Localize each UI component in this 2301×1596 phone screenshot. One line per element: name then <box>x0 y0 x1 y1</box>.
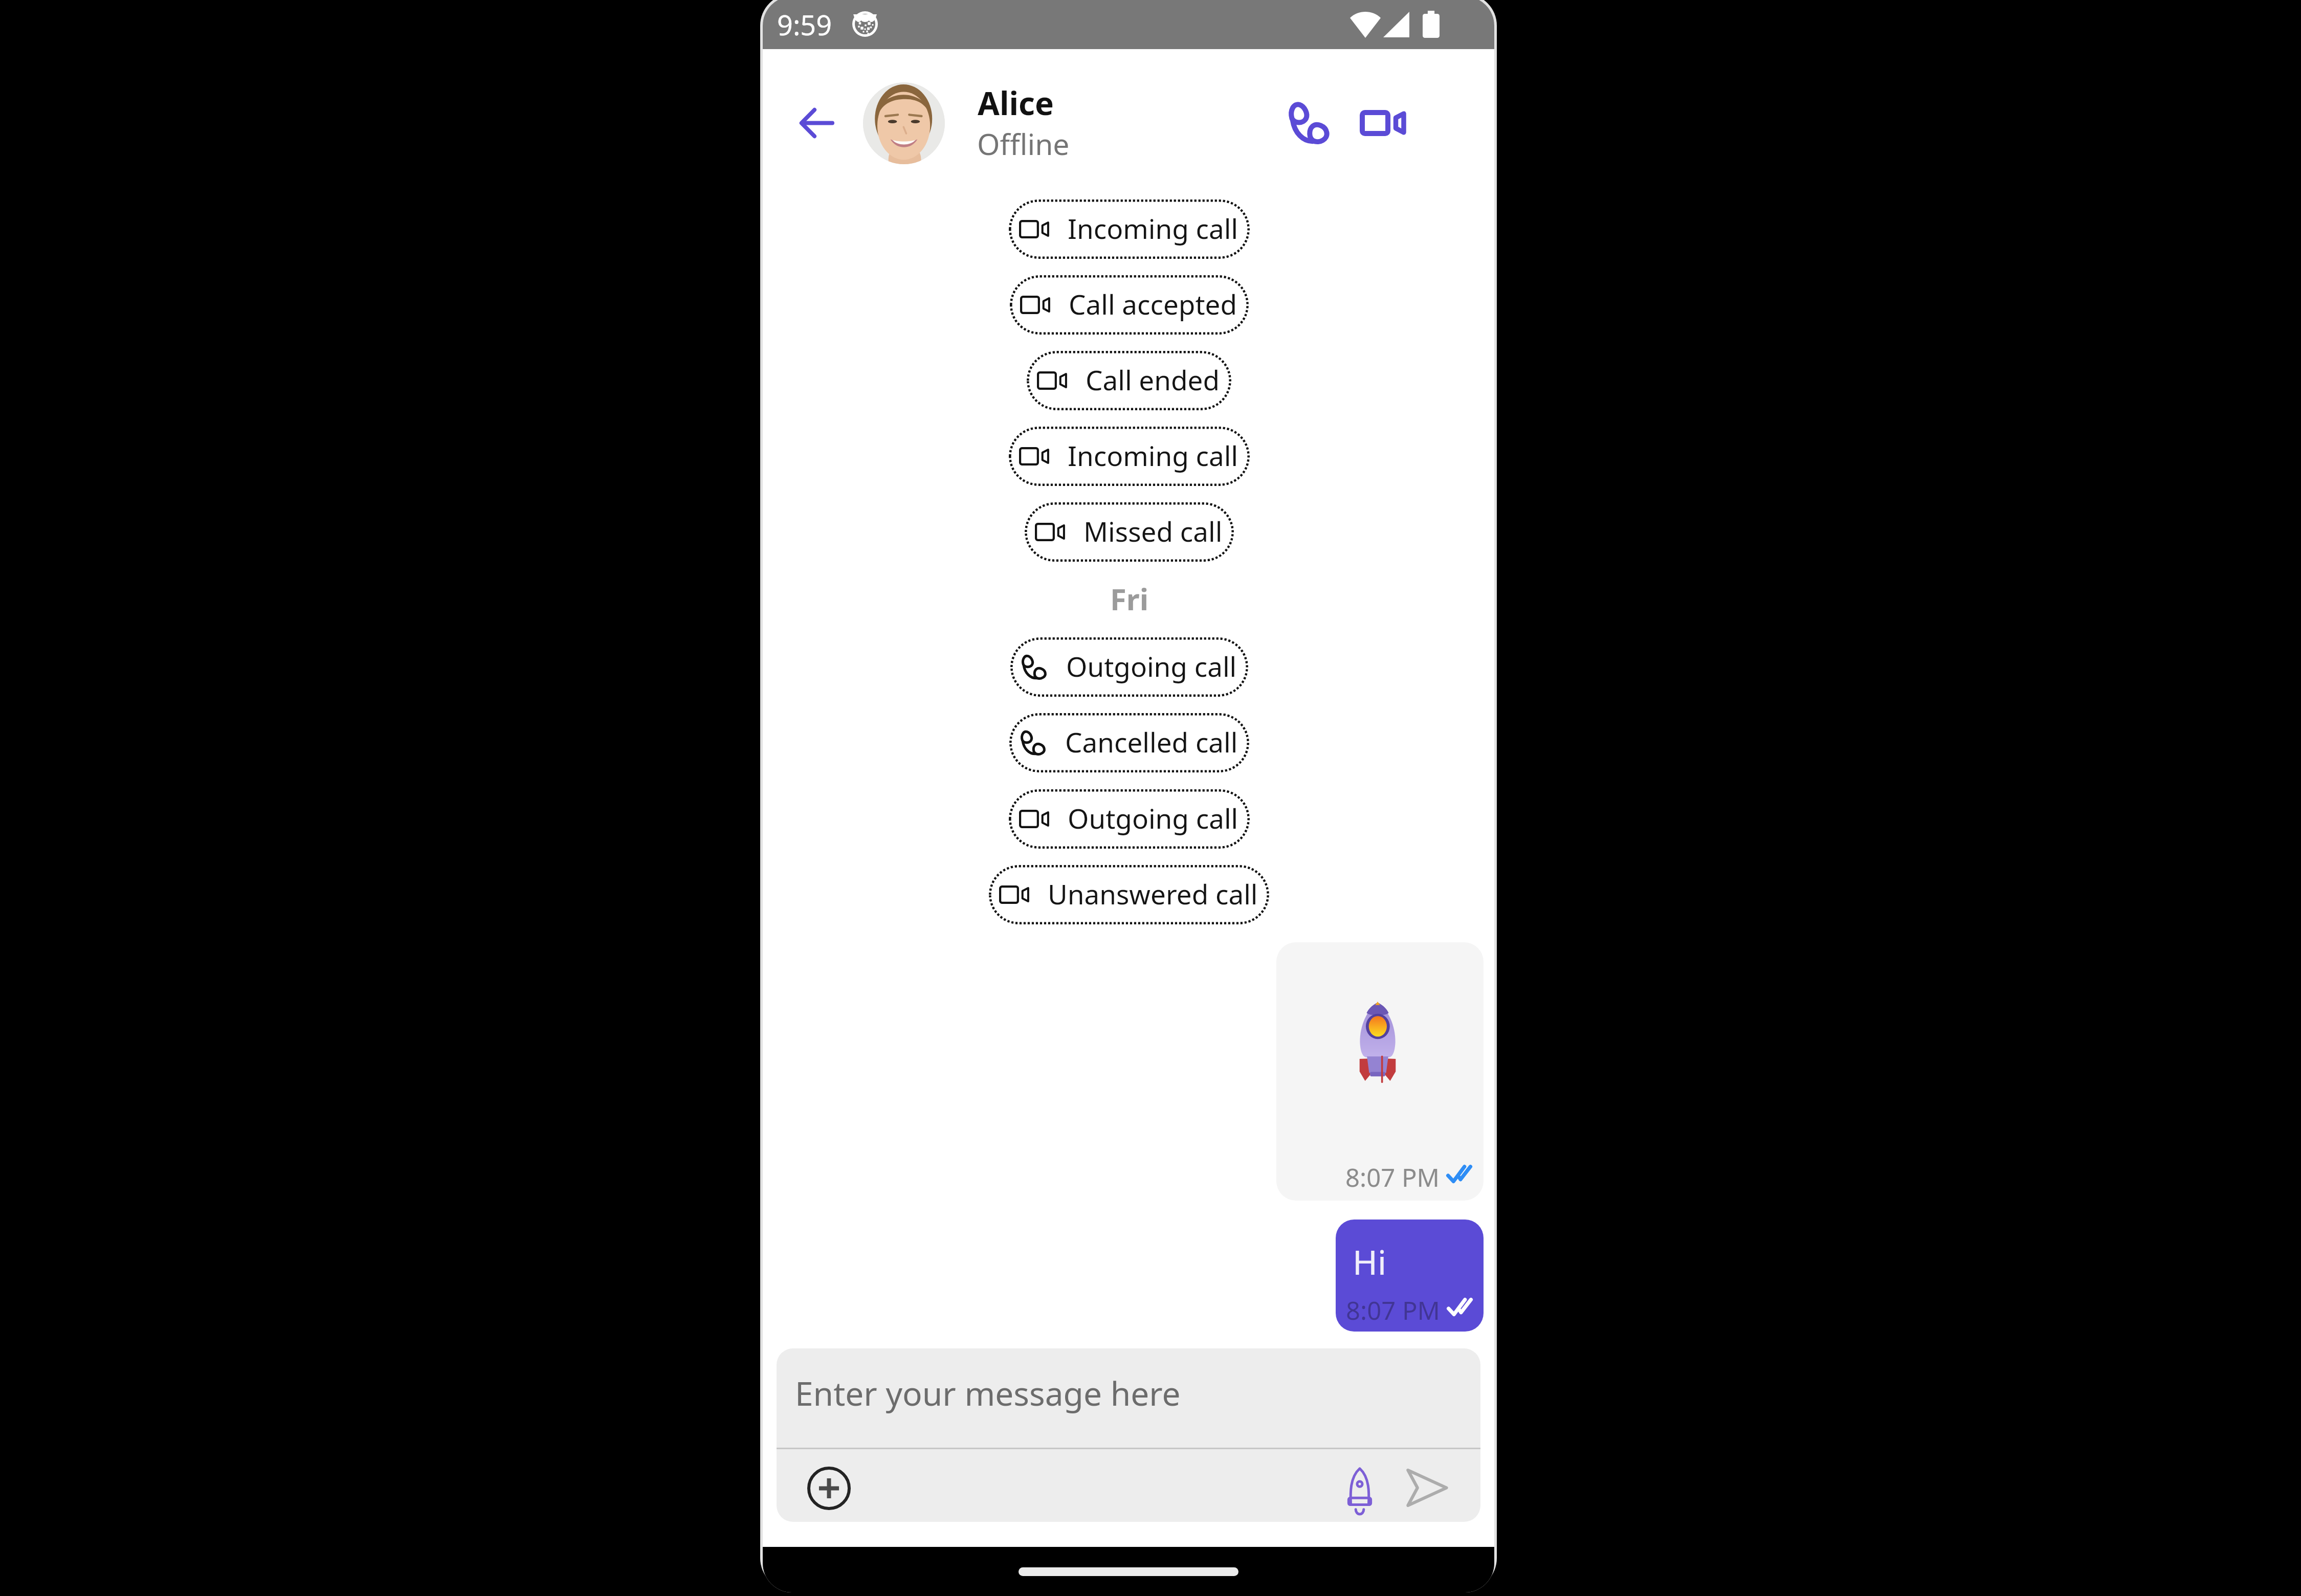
staticText: Hi <box>1353 1238 1386 1284</box>
button[interactable]: Call accepted <box>1010 275 1249 335</box>
button[interactable]: Call ended <box>1027 351 1231 410</box>
staticText: Cancelled call <box>1065 723 1238 760</box>
button[interactable]: Hi <box>1336 1220 1484 1332</box>
staticText: 9:59 <box>777 6 832 43</box>
staticText: Alice <box>978 81 1054 124</box>
staticText: Enter your message here <box>795 1371 1181 1415</box>
button[interactable]: Enter your message here <box>777 1348 1480 1448</box>
staticText: Unanswered call <box>1048 875 1258 912</box>
staticText: Incoming call <box>1068 437 1238 474</box>
button[interactable]: Outgoing call <box>1009 789 1250 849</box>
staticText: Missed call <box>1083 513 1223 549</box>
staticText: Outgoing call <box>1068 800 1238 836</box>
button[interactable]: Incoming call <box>1009 427 1250 486</box>
staticText: Call accepted <box>1069 285 1237 322</box>
button[interactable]: Profile photo <box>863 82 945 164</box>
staticText: Offline <box>977 124 1070 164</box>
button[interactable]: Send sticker <box>1335 1454 1384 1522</box>
staticText: Outgoing call <box>1066 648 1237 684</box>
button[interactable]: Video call <box>1348 95 1418 151</box>
staticText: 8:07 PM <box>1346 1293 1441 1327</box>
staticText: 8:07 PM <box>1345 1160 1440 1194</box>
button[interactable]: Outgoing call <box>1010 637 1248 697</box>
button[interactable]: Incoming call <box>1009 199 1250 259</box>
button[interactable]: Send <box>1392 1454 1462 1521</box>
button[interactable]: Back <box>789 95 845 151</box>
button[interactable]: Cancelled call <box>1009 713 1249 772</box>
button[interactable]: 8:07 PM <box>1276 942 1484 1201</box>
staticText: Call ended <box>1086 361 1220 398</box>
button[interactable]: Alice <box>973 81 1260 168</box>
staticText: Incoming call <box>1068 210 1238 247</box>
button[interactable]: Voice call <box>1274 95 1343 151</box>
button[interactable]: Missed call <box>1025 502 1234 562</box>
button[interactable]: Unanswered call <box>989 865 1269 924</box>
button[interactable]: Add attachment <box>799 1458 859 1518</box>
staticText: Fri <box>1110 579 1149 619</box>
